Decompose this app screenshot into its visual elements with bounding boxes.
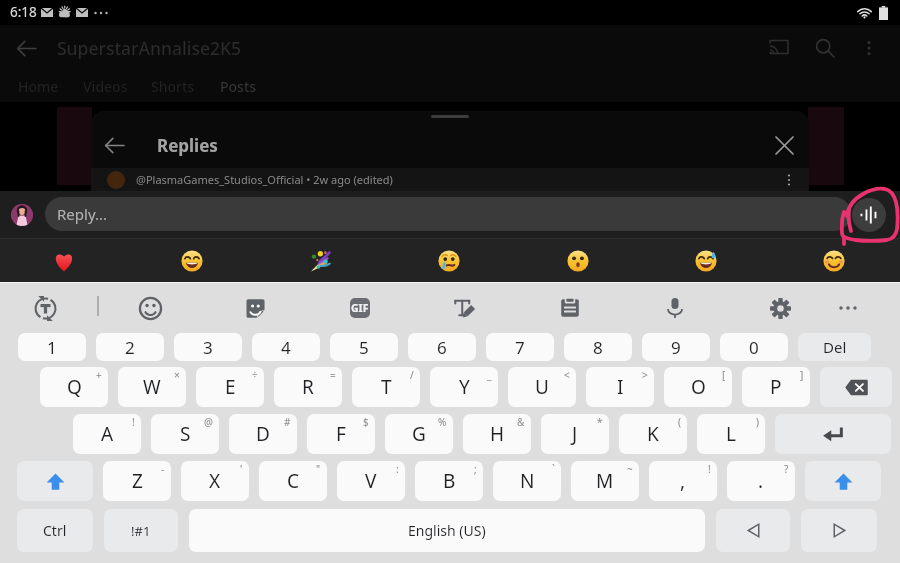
button[interactable]: K xyxy=(619,414,687,454)
button[interactable]: shift xyxy=(17,461,93,501)
button[interactable]: 9 xyxy=(642,333,710,361)
staticText: 6 xyxy=(437,336,447,359)
button[interactable]: Emoji reaction xyxy=(32,239,96,282)
button[interactable]: G xyxy=(385,414,453,454)
button[interactable]: right xyxy=(801,509,877,552)
button[interactable]: X xyxy=(181,461,249,501)
button[interactable]: Ctrl xyxy=(17,509,93,552)
staticText: G xyxy=(412,421,426,447)
button[interactable]: More xyxy=(830,290,866,326)
button[interactable]: Q xyxy=(40,367,108,407)
button[interactable]: B xyxy=(415,461,483,501)
button[interactable]: Text editing xyxy=(447,290,483,326)
button[interactable]: Clipboard xyxy=(552,290,588,326)
staticText: Ctrl xyxy=(43,521,67,540)
button[interactable]: !#1 xyxy=(104,509,178,552)
button[interactable]: Your account xyxy=(11,204,33,226)
button[interactable]: Emoji reaction xyxy=(417,239,481,282)
button[interactable]: Y xyxy=(430,367,498,407)
button[interactable]: D xyxy=(229,414,297,454)
staticText: $ xyxy=(363,415,369,429)
staticText: _ xyxy=(487,368,492,382)
button[interactable]: Del xyxy=(798,333,871,361)
button[interactable]: 0 xyxy=(720,333,788,361)
staticText: A xyxy=(101,421,114,447)
button[interactable]: More options xyxy=(851,30,887,66)
button[interactable]: Voice input xyxy=(657,290,693,326)
staticText: V xyxy=(365,468,377,494)
button[interactable]: Close xyxy=(765,126,803,164)
button[interactable]: F xyxy=(307,414,375,454)
button[interactable]: N xyxy=(493,461,561,501)
button[interactable]: Voice reply xyxy=(852,198,886,232)
staticText: W xyxy=(143,374,161,400)
staticText: GIF xyxy=(351,301,369,315)
button[interactable]: U xyxy=(508,367,576,407)
button[interactable]: Reply... xyxy=(45,197,851,231)
button[interactable]: A xyxy=(73,414,141,454)
button[interactable]: S xyxy=(151,414,219,454)
button[interactable]: Emoji reaction xyxy=(674,239,738,282)
button[interactable]: More xyxy=(777,168,801,191)
button[interactable]: I xyxy=(586,367,654,407)
button[interactable]: C xyxy=(259,461,327,501)
staticText: Replies xyxy=(157,134,218,157)
button[interactable]: shift xyxy=(805,461,881,501)
button[interactable]: bs xyxy=(820,367,892,407)
staticText: K xyxy=(647,421,659,447)
button[interactable]: enter xyxy=(775,414,891,454)
button[interactable]: W xyxy=(118,367,186,407)
button[interactable]: 4 xyxy=(252,333,320,361)
button[interactable]: , xyxy=(649,461,717,501)
staticText: R xyxy=(302,374,314,400)
button[interactable]: Cast xyxy=(761,30,797,66)
button[interactable]: Posts xyxy=(220,77,257,96)
button[interactable]: T xyxy=(352,367,420,407)
button[interactable]: E xyxy=(196,367,264,407)
button[interactable]: Videos xyxy=(83,77,128,96)
button[interactable]: Settings xyxy=(762,290,798,326)
button[interactable]: left xyxy=(716,509,790,552)
button[interactable]: 1 xyxy=(18,333,86,361)
staticText: [ xyxy=(722,368,726,382)
button[interactable]: Emoji xyxy=(132,290,168,326)
button[interactable]: H xyxy=(463,414,531,454)
button[interactable]: Emoji reaction xyxy=(160,239,224,282)
button[interactable]: English (US) xyxy=(189,509,705,552)
staticText: * xyxy=(597,415,603,429)
button[interactable]: Emoji reaction xyxy=(546,239,610,282)
button[interactable]: Stickers xyxy=(237,290,273,326)
button[interactable]: 6 xyxy=(408,333,476,361)
button[interactable]: Back xyxy=(95,126,133,164)
button[interactable]: J xyxy=(541,414,609,454)
button[interactable]: L xyxy=(697,414,765,454)
button[interactable]: 5 xyxy=(330,333,398,361)
button[interactable]: Z xyxy=(103,461,171,501)
button[interactable]: R xyxy=(274,367,342,407)
staticText: 9 xyxy=(671,336,681,359)
button[interactable]: 8 xyxy=(564,333,632,361)
button[interactable]: M xyxy=(571,461,639,501)
button[interactable]: Emoji reaction xyxy=(289,239,353,282)
staticText: : xyxy=(396,462,399,476)
button[interactable]: GIF xyxy=(342,290,378,326)
staticText: 3 xyxy=(203,336,213,359)
button[interactable]: 7 xyxy=(486,333,554,361)
button[interactable]: Translate xyxy=(27,290,63,326)
button[interactable]: O xyxy=(664,367,732,407)
button[interactable]: Shorts xyxy=(151,77,195,96)
staticText: ] xyxy=(800,368,804,382)
staticText: T xyxy=(381,374,392,400)
staticText: & xyxy=(517,415,525,429)
button[interactable]: Search xyxy=(807,30,843,66)
button[interactable]: 2 xyxy=(96,333,164,361)
button[interactable]: . xyxy=(727,461,795,501)
button[interactable]: Back xyxy=(9,31,43,65)
button[interactable]: Home xyxy=(18,77,59,96)
button[interactable]: P xyxy=(742,367,810,407)
button[interactable]: V xyxy=(337,461,405,501)
staticText: Reply... xyxy=(57,204,107,224)
button[interactable]: 3 xyxy=(174,333,242,361)
button[interactable]: Emoji reaction xyxy=(802,239,866,282)
staticText: ' xyxy=(240,462,243,476)
